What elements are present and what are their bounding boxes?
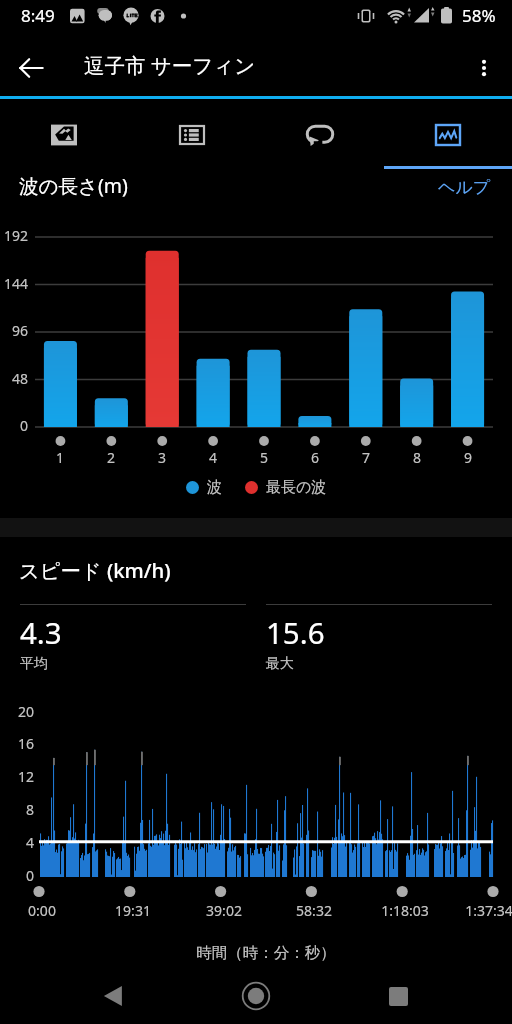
staticText: 3 xyxy=(147,448,177,467)
staticText: 19:31 xyxy=(98,901,168,920)
staticText: 8:49 xyxy=(21,4,55,27)
button[interactable]: More options xyxy=(456,36,512,99)
staticText: 平均 xyxy=(20,655,48,673)
staticText: 最大 xyxy=(266,655,294,673)
button[interactable]: Graphs xyxy=(384,99,512,169)
staticText: 1 xyxy=(45,448,75,467)
staticText: 4 xyxy=(0,833,34,852)
staticText: 8 xyxy=(402,448,432,467)
staticText: 16 xyxy=(0,734,34,753)
button[interactable]: Back xyxy=(85,969,141,1023)
staticText: 192 xyxy=(0,226,28,245)
staticText: 96 xyxy=(0,321,28,340)
staticText: 6 xyxy=(300,448,330,467)
staticText: 58:32 xyxy=(279,901,349,920)
button[interactable]: Map xyxy=(0,99,128,169)
staticText: 0 xyxy=(0,416,28,435)
staticText: 20 xyxy=(0,702,34,721)
staticText: 12 xyxy=(0,767,34,786)
staticText: 2 xyxy=(96,448,126,467)
staticText: ヘルプ xyxy=(438,177,491,198)
staticText: 8 xyxy=(0,800,34,819)
staticText: 58% xyxy=(462,4,496,27)
staticText: 0 xyxy=(0,866,34,885)
button[interactable]: ヘルプ xyxy=(438,177,491,198)
button[interactable]: Laps xyxy=(256,99,384,169)
staticText: 1:18:03 xyxy=(370,901,440,920)
staticText: 9 xyxy=(453,448,483,467)
staticText: 48 xyxy=(0,369,28,388)
staticText: 15.6 xyxy=(266,612,325,652)
staticText: 7 xyxy=(351,448,381,467)
staticText: 0:00 xyxy=(7,901,77,920)
button[interactable]: Details xyxy=(128,99,256,169)
button[interactable]: Recent apps xyxy=(370,969,426,1023)
staticText: 時間（時：分：秒） xyxy=(10,943,512,963)
button[interactable]: Back xyxy=(0,36,62,99)
staticText: 4.3 xyxy=(20,612,62,652)
staticText: 最長の波 xyxy=(266,478,327,497)
staticText: 波の長さ(m) xyxy=(19,172,128,199)
staticText: 39:02 xyxy=(189,901,259,920)
staticText: スピード (km/h) xyxy=(19,556,171,584)
staticText: 逗子市 サーフィン xyxy=(84,51,256,79)
staticText: 波 xyxy=(207,478,222,497)
staticText: 5 xyxy=(249,448,279,467)
staticText: 1:37:34 xyxy=(454,901,512,920)
staticText: 4 xyxy=(198,448,228,467)
staticText: 144 xyxy=(0,274,28,293)
button[interactable]: Home xyxy=(228,969,284,1023)
